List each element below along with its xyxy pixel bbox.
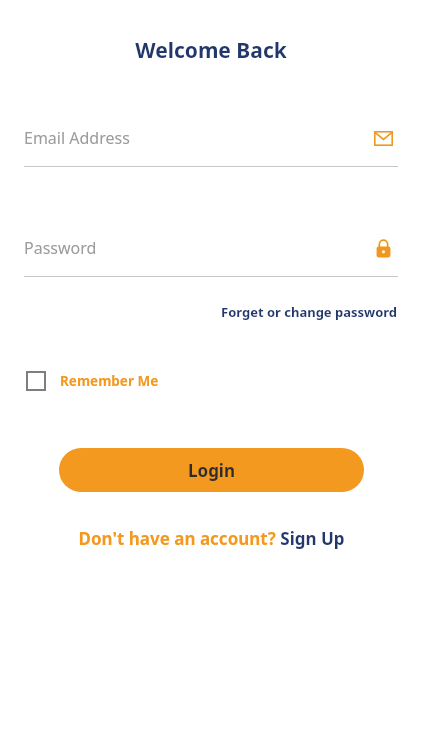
button[interactable]: Don't have an account? Sign Up bbox=[74, 525, 349, 552]
button[interactable]: Remember Me bbox=[24, 369, 167, 393]
staticText: Welcome Back bbox=[24, 36, 398, 65]
staticText: Login bbox=[188, 459, 236, 482]
staticText: Email Address bbox=[24, 127, 368, 149]
staticText: Password bbox=[24, 237, 368, 259]
staticText: Remember Me bbox=[60, 372, 159, 390]
staticText: Don't have an account? Sign Up bbox=[78, 527, 345, 550]
staticText: Forget or change password bbox=[221, 303, 398, 321]
button[interactable]: Login bbox=[59, 448, 364, 492]
button[interactable]: Forget or change password bbox=[221, 301, 398, 323]
